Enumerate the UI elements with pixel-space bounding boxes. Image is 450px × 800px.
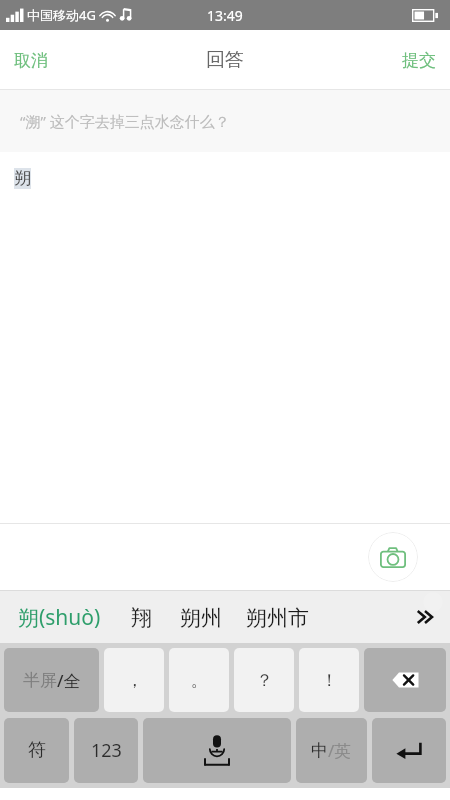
staticText: 回答 [206,48,244,72]
button[interactable]: Take photo [368,532,418,582]
staticText: 提交 [402,50,436,71]
button[interactable]: 朔州市 [242,599,313,637]
button[interactable]: 朔州 [176,599,226,637]
button[interactable]: 翔 [127,599,156,637]
button[interactable]: 朔(shuò) [14,597,105,638]
staticText: 123 [91,738,122,763]
button[interactable]: 123 [74,718,138,783]
staticText: ！ [321,670,338,691]
button[interactable]: 提交 [388,30,450,90]
staticText: 中 [311,740,328,761]
staticText: /全 [57,669,81,692]
staticText: 符 [28,739,46,762]
staticText: ， [126,670,143,691]
button[interactable]: More candidates [402,591,450,643]
button[interactable]: Backspace [364,648,446,712]
button[interactable]: ！ [299,648,359,712]
button[interactable]: ， [104,648,164,712]
button[interactable]: 半屏 [4,648,99,712]
staticText: ？ [256,670,273,691]
staticText: 中国移动4G [27,6,96,24]
button[interactable]: 取消 [0,30,62,90]
staticText: 13:49 [207,6,243,25]
staticText: 翔 [131,605,152,631]
staticText: /英 [328,739,352,762]
button[interactable]: Space, voice input [143,718,291,783]
button[interactable]: 符 [4,718,69,783]
staticText: “溯” 这个字去掉三点水念什么？ [20,111,230,131]
button[interactable]: 朔 [0,152,450,523]
staticText: 。 [191,670,208,691]
button[interactable]: 中 [296,718,367,783]
button[interactable]: ？ [234,648,294,712]
staticText: 朔(shuò) [18,603,101,632]
staticText: 取消 [14,50,48,71]
button[interactable]: Enter [372,718,446,783]
button[interactable]: 。 [169,648,229,712]
staticText: 朔州 [180,605,222,631]
staticText: 朔 [14,168,31,189]
staticText: 朔州市 [246,605,309,631]
staticText: 半屏 [23,670,57,691]
